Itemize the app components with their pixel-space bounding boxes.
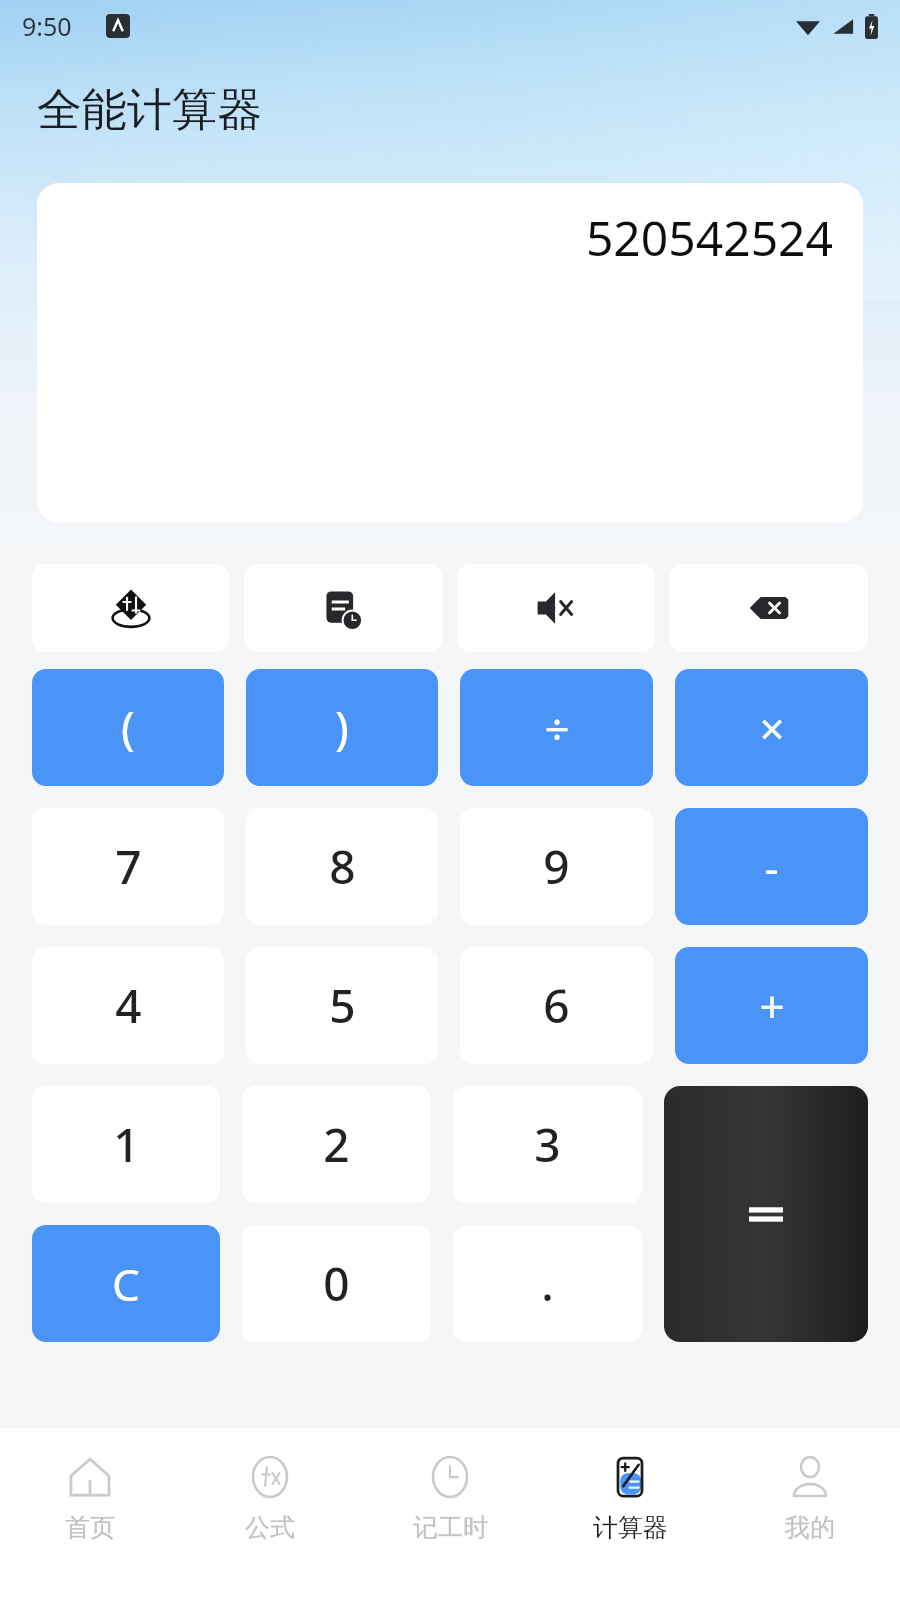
button[interactable]: 我的 bbox=[720, 1428, 900, 1600]
staticText: 7 bbox=[115, 835, 142, 898]
button[interactable]: 首页 bbox=[0, 1428, 180, 1600]
staticText: C bbox=[112, 1254, 140, 1314]
staticText: 记工时 bbox=[413, 1512, 488, 1543]
staticText: 1 bbox=[113, 1113, 140, 1176]
staticText: - bbox=[764, 837, 779, 897]
staticText: . bbox=[541, 1252, 554, 1315]
staticText: 4 bbox=[115, 974, 142, 1037]
button[interactable]: C bbox=[32, 1225, 220, 1342]
staticText: 0 bbox=[323, 1252, 350, 1315]
button[interactable]: ÷ bbox=[460, 669, 653, 786]
staticText: ) bbox=[335, 696, 349, 759]
button[interactable]: 1 bbox=[32, 1086, 220, 1203]
staticText: 5 bbox=[329, 974, 356, 1037]
button[interactable]: - bbox=[675, 808, 868, 925]
button[interactable]: 0 bbox=[242, 1225, 431, 1342]
staticText: 首页 bbox=[65, 1512, 115, 1543]
button[interactable]: + bbox=[675, 947, 868, 1064]
staticText: 公式 bbox=[245, 1512, 295, 1543]
button[interactable]: 520542524 bbox=[37, 183, 863, 523]
staticText: 计算器 bbox=[593, 1512, 668, 1543]
button[interactable]: 3 bbox=[453, 1086, 642, 1203]
button[interactable]: Equals bbox=[664, 1086, 868, 1342]
button[interactable]: Mute bbox=[457, 564, 655, 652]
staticText: + bbox=[759, 976, 785, 1036]
button[interactable]: 2 bbox=[242, 1086, 431, 1203]
staticText: ( bbox=[121, 696, 135, 759]
button[interactable]: 记工时 bbox=[360, 1428, 540, 1600]
button[interactable]: 公式 bbox=[180, 1428, 360, 1600]
staticText: 3 bbox=[534, 1113, 561, 1176]
button[interactable]: ( bbox=[32, 669, 224, 786]
button[interactable]: . bbox=[453, 1225, 642, 1342]
staticText: 全能计算器 bbox=[37, 82, 262, 139]
staticText: 8 bbox=[329, 835, 356, 898]
staticText: 9:50 bbox=[22, 9, 72, 43]
staticText: ÷ bbox=[544, 698, 570, 758]
button[interactable]: 6 bbox=[460, 947, 653, 1064]
staticText: 6 bbox=[543, 974, 570, 1037]
button[interactable]: Scientific mode bbox=[32, 564, 229, 652]
button[interactable]: × bbox=[675, 669, 868, 786]
staticText: 2 bbox=[323, 1113, 350, 1176]
staticText: 520542524 bbox=[585, 205, 833, 270]
button[interactable]: 8 bbox=[246, 808, 438, 925]
button[interactable]: History bbox=[244, 564, 442, 652]
button[interactable]: Backspace bbox=[670, 564, 868, 652]
staticText: 9 bbox=[543, 835, 570, 898]
button[interactable]: 9 bbox=[460, 808, 653, 925]
button[interactable]: 5 bbox=[246, 947, 438, 1064]
button[interactable]: ) bbox=[246, 669, 438, 786]
button[interactable]: 7 bbox=[32, 808, 224, 925]
staticText: 我的 bbox=[785, 1512, 835, 1543]
button[interactable]: 计算器 bbox=[540, 1428, 720, 1600]
staticText: × bbox=[759, 698, 785, 758]
button[interactable]: 4 bbox=[32, 947, 224, 1064]
